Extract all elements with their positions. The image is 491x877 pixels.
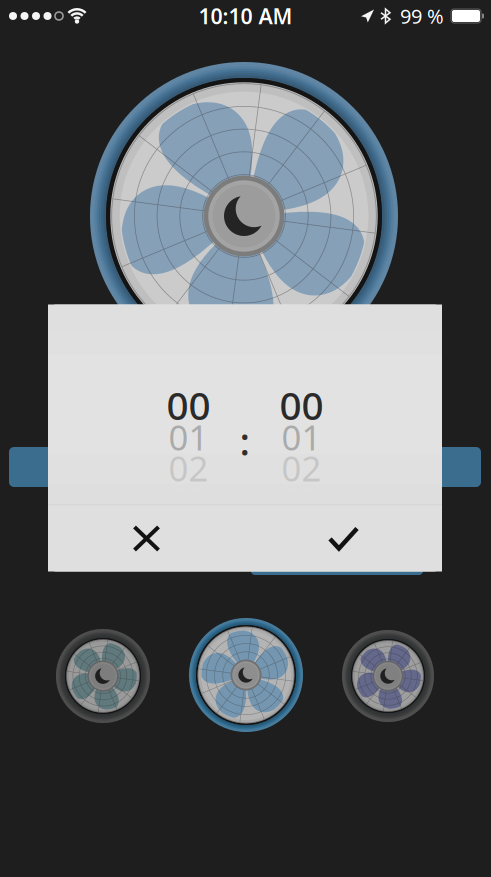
staticText: 00 [279, 379, 323, 431]
staticText: 03 [168, 476, 208, 522]
button[interactable]: Fan preset two, selected [181, 610, 311, 740]
staticText: 02 [281, 445, 321, 491]
staticText: 01 [168, 414, 208, 460]
button[interactable]: Increase speed [429, 447, 481, 487]
button[interactable]: Decrease speed [9, 447, 61, 487]
staticText: 00 [166, 379, 210, 431]
staticText: 99 % [400, 3, 444, 29]
staticText: 01 [281, 414, 321, 460]
staticText: 10:10 AM [198, 2, 292, 30]
staticText: 03 [281, 476, 321, 522]
staticText: : [239, 415, 250, 466]
button[interactable]: Confirm [245, 505, 442, 571]
button[interactable]: Cancel [48, 505, 245, 571]
staticText: 02 [168, 445, 208, 491]
button[interactable]: Fan preset one [43, 616, 163, 736]
button[interactable]: Fan preset three [328, 616, 448, 736]
